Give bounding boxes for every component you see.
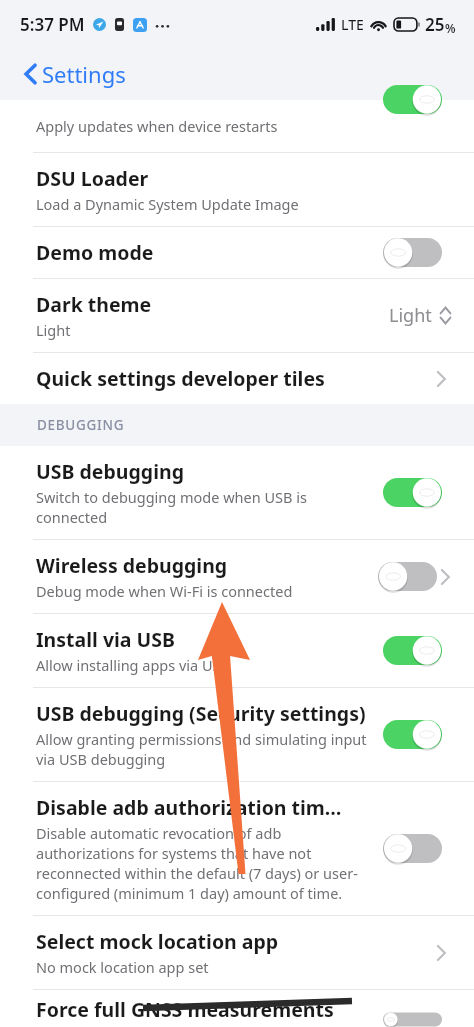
button[interactable]: Toggle on	[383, 477, 442, 508]
staticText: LTE	[341, 15, 364, 34]
button[interactable]: Settings	[24, 55, 140, 93]
staticText: Settings	[42, 59, 126, 89]
button[interactable]: Quick settings developer tiles	[0, 353, 474, 404]
staticText: Allow granting permissions and simulatin…	[36, 729, 375, 769]
button[interactable]: Toggle on	[383, 635, 442, 666]
button[interactable]: Toggle off	[383, 1012, 442, 1027]
staticText: USB debugging (Security settings)	[36, 700, 366, 727]
staticText: Light	[389, 303, 432, 328]
button[interactable]: Demo mode	[0, 227, 474, 278]
staticText: Light	[36, 320, 71, 340]
staticText: DSU Loader	[36, 165, 149, 192]
button[interactable]: Toggle on	[383, 719, 442, 750]
other: Open	[435, 942, 448, 964]
staticText: Debug mode when Wi-Fi is connected	[36, 581, 293, 601]
staticText: Dark theme	[36, 291, 152, 318]
button[interactable]: Toggle off	[383, 833, 442, 864]
staticText: 25	[425, 13, 445, 36]
other: Open	[439, 566, 452, 588]
staticText: Select mock location app	[36, 928, 279, 955]
staticText: Force full GNSS measurements	[36, 996, 334, 1023]
staticText: Demo mode	[36, 239, 154, 266]
staticText: Quick settings developer tiles	[36, 365, 325, 392]
other: Open	[435, 368, 448, 390]
button[interactable]: Toggle off	[378, 561, 437, 592]
button[interactable]: Wireless debugging	[0, 540, 474, 613]
button[interactable]: Force full GNSS measurements	[0, 990, 474, 1027]
button[interactable]: Disable adb authorization tim…	[0, 782, 474, 915]
staticText: DEBUGGING	[37, 416, 125, 434]
staticText: USB debugging	[36, 458, 184, 485]
button[interactable]: USB debugging (Security settings)	[0, 688, 474, 781]
staticText: %	[445, 20, 456, 36]
button[interactable]: Select mock location app	[0, 916, 474, 989]
button[interactable]: Toggle off	[383, 237, 442, 268]
button[interactable]: Toggle on	[383, 84, 442, 115]
staticText: No mock location app set	[36, 957, 209, 977]
staticText: Switch to debugging mode when USB is con…	[36, 487, 375, 527]
staticText: Load a Dynamic System Update Image	[36, 194, 299, 214]
button[interactable]: Dark theme	[0, 279, 474, 352]
staticText: Allow installing apps via USB	[36, 655, 230, 675]
button[interactable]: DSU Loader	[0, 153, 474, 226]
staticText: Install via USB	[36, 626, 176, 653]
staticText: 5:37 PM	[20, 13, 85, 36]
button[interactable]: Install via USB	[0, 614, 474, 687]
button[interactable]: USB debugging	[0, 446, 474, 539]
staticText: Wireless debugging	[36, 552, 228, 579]
staticText: Apply updates when device restarts	[36, 116, 278, 136]
staticText: Disable adb authorization tim…	[36, 794, 342, 821]
staticText: Disable automatic revocation of adb auth…	[36, 823, 375, 903]
